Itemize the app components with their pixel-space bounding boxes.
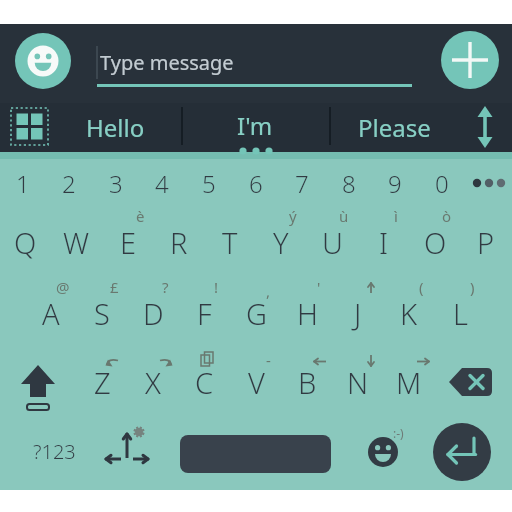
button[interactable]: F [179, 282, 229, 344]
button[interactable]: 0 [419, 160, 465, 206]
button[interactable]: P [461, 211, 511, 273]
staticText: I'm [237, 109, 273, 142]
staticText: Hello [86, 111, 145, 144]
staticText: Y [273, 223, 289, 262]
button[interactable] [442, 360, 502, 404]
button[interactable]: X [128, 351, 178, 413]
staticText: 8 [342, 167, 356, 200]
staticText: Type message [100, 49, 234, 76]
button[interactable]: L [435, 282, 485, 344]
staticText: M [396, 363, 422, 402]
button[interactable] [465, 104, 505, 150]
staticText: 0 [435, 167, 449, 200]
button[interactable] [8, 105, 52, 149]
staticText: 5 [202, 167, 216, 200]
staticText: ? [162, 277, 169, 297]
staticText: ò [442, 206, 452, 226]
button[interactable]: 5 [186, 160, 232, 206]
staticText: Q [14, 223, 37, 262]
button[interactable]: 2 [46, 160, 92, 206]
staticText: Z [94, 363, 111, 402]
staticText: N [347, 363, 369, 402]
staticText: B [298, 363, 317, 402]
button[interactable]: D [128, 282, 178, 344]
staticText: ) [470, 277, 475, 297]
staticText: 7 [295, 167, 309, 200]
button[interactable]: ?123 [14, 425, 94, 477]
staticText: G [246, 294, 267, 333]
button[interactable]: I [359, 211, 409, 273]
button[interactable]: Q [0, 211, 50, 273]
button[interactable]: I'm [200, 104, 310, 146]
button[interactable]: 1 [0, 160, 46, 206]
staticText: ì [394, 206, 398, 226]
button[interactable]: W [51, 211, 101, 273]
button[interactable]: U [307, 211, 357, 273]
staticText: 4 [155, 167, 169, 200]
button[interactable]: S [77, 282, 127, 344]
button[interactable]: A [26, 282, 76, 344]
staticText: ù [339, 206, 349, 226]
button[interactable] [15, 33, 71, 89]
staticText: P [477, 223, 495, 262]
button[interactable]: Hello [60, 104, 170, 150]
button[interactable] [363, 432, 403, 472]
staticText: R [170, 223, 188, 262]
button[interactable]: Z [77, 351, 127, 413]
button[interactable] [180, 435, 331, 473]
staticText: £ [110, 277, 119, 297]
button[interactable]: R [154, 211, 204, 273]
button[interactable]: Y [256, 211, 306, 273]
staticText: , [266, 281, 271, 301]
staticText: C [195, 363, 214, 402]
button[interactable] [433, 423, 491, 481]
button[interactable]: G [231, 282, 281, 344]
button[interactable]: H [282, 282, 332, 344]
staticText: T [222, 223, 238, 262]
staticText: ý [289, 206, 297, 226]
button[interactable]: C [179, 351, 229, 413]
staticText: ! [214, 277, 219, 297]
button[interactable] [471, 176, 507, 190]
staticText: è [136, 206, 145, 226]
staticText: Please [358, 111, 431, 144]
button[interactable]: 8 [326, 160, 372, 206]
staticText: 3 [109, 167, 123, 200]
staticText: 1 [16, 167, 30, 200]
staticText: U [322, 223, 343, 262]
button[interactable]: 3 [93, 160, 139, 206]
button[interactable] [441, 31, 499, 89]
staticText: :-) [393, 425, 404, 441]
button[interactable] [100, 424, 160, 484]
button[interactable]: O [410, 211, 460, 273]
staticText: D [143, 294, 164, 333]
button[interactable]: J [333, 282, 383, 344]
button[interactable]: 7 [279, 160, 325, 206]
button[interactable]: 6 [233, 160, 279, 206]
staticText: X [145, 363, 161, 402]
button[interactable] [10, 358, 66, 414]
button[interactable]: M [384, 351, 434, 413]
staticText: H [297, 294, 318, 333]
staticText: 2 [62, 167, 76, 200]
staticText: 9 [388, 167, 402, 200]
staticText: K [400, 294, 418, 333]
staticText: @ [56, 277, 70, 297]
button[interactable]: B [282, 351, 332, 413]
staticText: ' [317, 277, 321, 297]
staticText: V [248, 363, 265, 402]
staticText: ?123 [33, 438, 76, 465]
staticText: - [266, 350, 271, 366]
button[interactable]: 9 [372, 160, 418, 206]
button[interactable]: V [231, 351, 281, 413]
button[interactable]: 4 [139, 160, 185, 206]
staticText: L [453, 294, 468, 333]
button[interactable]: E [103, 211, 153, 273]
button[interactable]: T [205, 211, 255, 273]
button[interactable]: Please [339, 104, 449, 150]
button[interactable]: K [384, 282, 434, 344]
staticText: F [197, 294, 212, 333]
button[interactable]: N [333, 351, 383, 413]
staticText: 6 [249, 167, 263, 200]
staticText: J [354, 294, 362, 333]
